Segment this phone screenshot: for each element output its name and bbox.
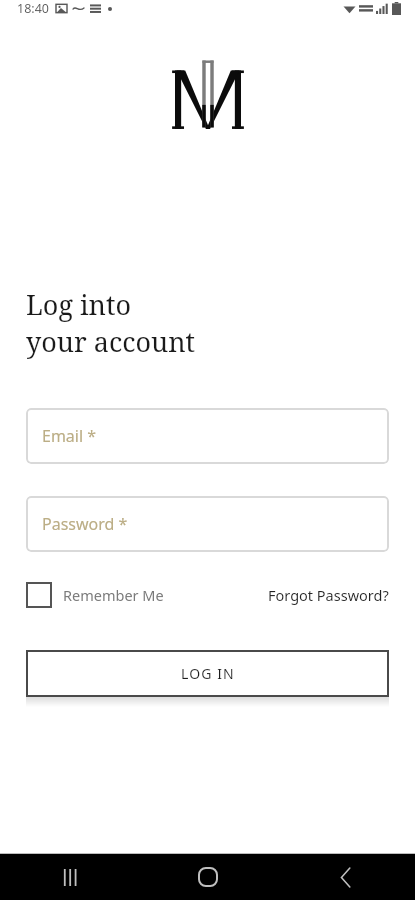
staticText: LOG IN [181, 664, 235, 683]
staticText: your account [26, 323, 196, 360]
button[interactable]: Email * [26, 408, 389, 464]
staticText: Password * [42, 513, 128, 535]
staticText: 18:40 [17, 0, 49, 17]
button[interactable]: Password * [26, 496, 389, 552]
staticText: Forgot Password? [268, 585, 389, 605]
button[interactable]: LOG IN [26, 650, 389, 697]
staticText: Log into [26, 286, 132, 323]
other: Brand logo [167, 59, 249, 133]
button[interactable]: Home [139, 854, 277, 900]
button[interactable]: Forgot Password? [268, 585, 389, 605]
button[interactable]: Back [277, 854, 415, 900]
button[interactable]: Recent apps [0, 854, 139, 900]
staticText: Email * [42, 425, 97, 447]
staticText: Remember Me [63, 585, 164, 605]
button[interactable]: Remember Me [26, 582, 170, 608]
